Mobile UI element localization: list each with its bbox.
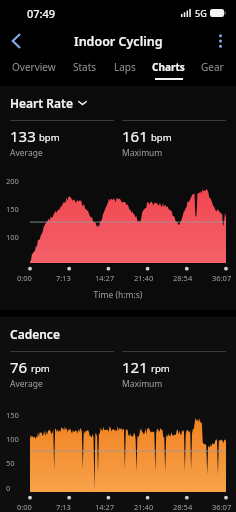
- staticText: 100: [6, 232, 19, 242]
- button[interactable]: Back: [0, 26, 32, 56]
- button[interactable]: Charts: [144, 56, 192, 84]
- button[interactable]: Cadence: [10, 326, 236, 342]
- staticText: 21:40: [134, 273, 154, 283]
- button[interactable]: More options: [204, 26, 236, 56]
- staticText: 36:07: [212, 273, 232, 283]
- staticText: 200: [6, 176, 19, 186]
- staticText: 5G: [195, 7, 207, 19]
- button[interactable]: Laps: [105, 56, 144, 84]
- staticText: 14:27: [95, 502, 115, 512]
- button[interactable]: Overview: [4, 56, 64, 84]
- staticText: Laps: [114, 60, 136, 74]
- staticText: Stats: [73, 60, 97, 74]
- staticText: Maximum: [122, 378, 163, 390]
- staticText: 50: [6, 458, 15, 468]
- staticText: rpm: [151, 362, 170, 375]
- staticText: 36:07: [212, 502, 232, 512]
- staticText: 21:40: [134, 502, 154, 512]
- staticText: 7:13: [56, 502, 71, 512]
- staticText: 07:49: [27, 6, 56, 21]
- staticText: Indoor Cycling: [74, 33, 163, 50]
- button[interactable]: Stats: [64, 56, 105, 84]
- staticText: 133: [10, 126, 36, 146]
- staticText: Charts: [152, 60, 185, 74]
- staticText: Heart Rate: [10, 95, 73, 111]
- button[interactable]: Gear: [192, 56, 232, 84]
- staticText: Gear: [201, 60, 224, 74]
- staticText: Average: [10, 378, 43, 390]
- staticText: rpm: [31, 362, 50, 375]
- staticText: 161: [122, 126, 148, 146]
- staticText: Time (h:m:s): [0, 289, 236, 301]
- staticText: Average: [10, 147, 43, 159]
- staticText: 28:54: [173, 273, 193, 283]
- staticText: 150: [6, 204, 19, 214]
- staticText: 28:54: [173, 502, 193, 512]
- staticText: Overview: [12, 60, 56, 74]
- staticText: 100: [6, 434, 19, 444]
- staticText: bpm: [151, 131, 172, 144]
- staticText: bpm: [39, 131, 60, 144]
- staticText: 14:27: [95, 273, 115, 283]
- staticText: 7:13: [56, 273, 71, 283]
- staticText: Maximum: [122, 147, 163, 159]
- button[interactable]: Heart Rate: [10, 95, 236, 111]
- staticText: 121: [122, 357, 148, 377]
- staticText: 76: [10, 357, 28, 377]
- staticText: 0:00: [17, 273, 32, 283]
- staticText: 0:00: [17, 502, 32, 512]
- staticText: Cadence: [10, 326, 60, 342]
- staticText: 0: [6, 483, 11, 493]
- staticText: 150: [6, 410, 19, 420]
